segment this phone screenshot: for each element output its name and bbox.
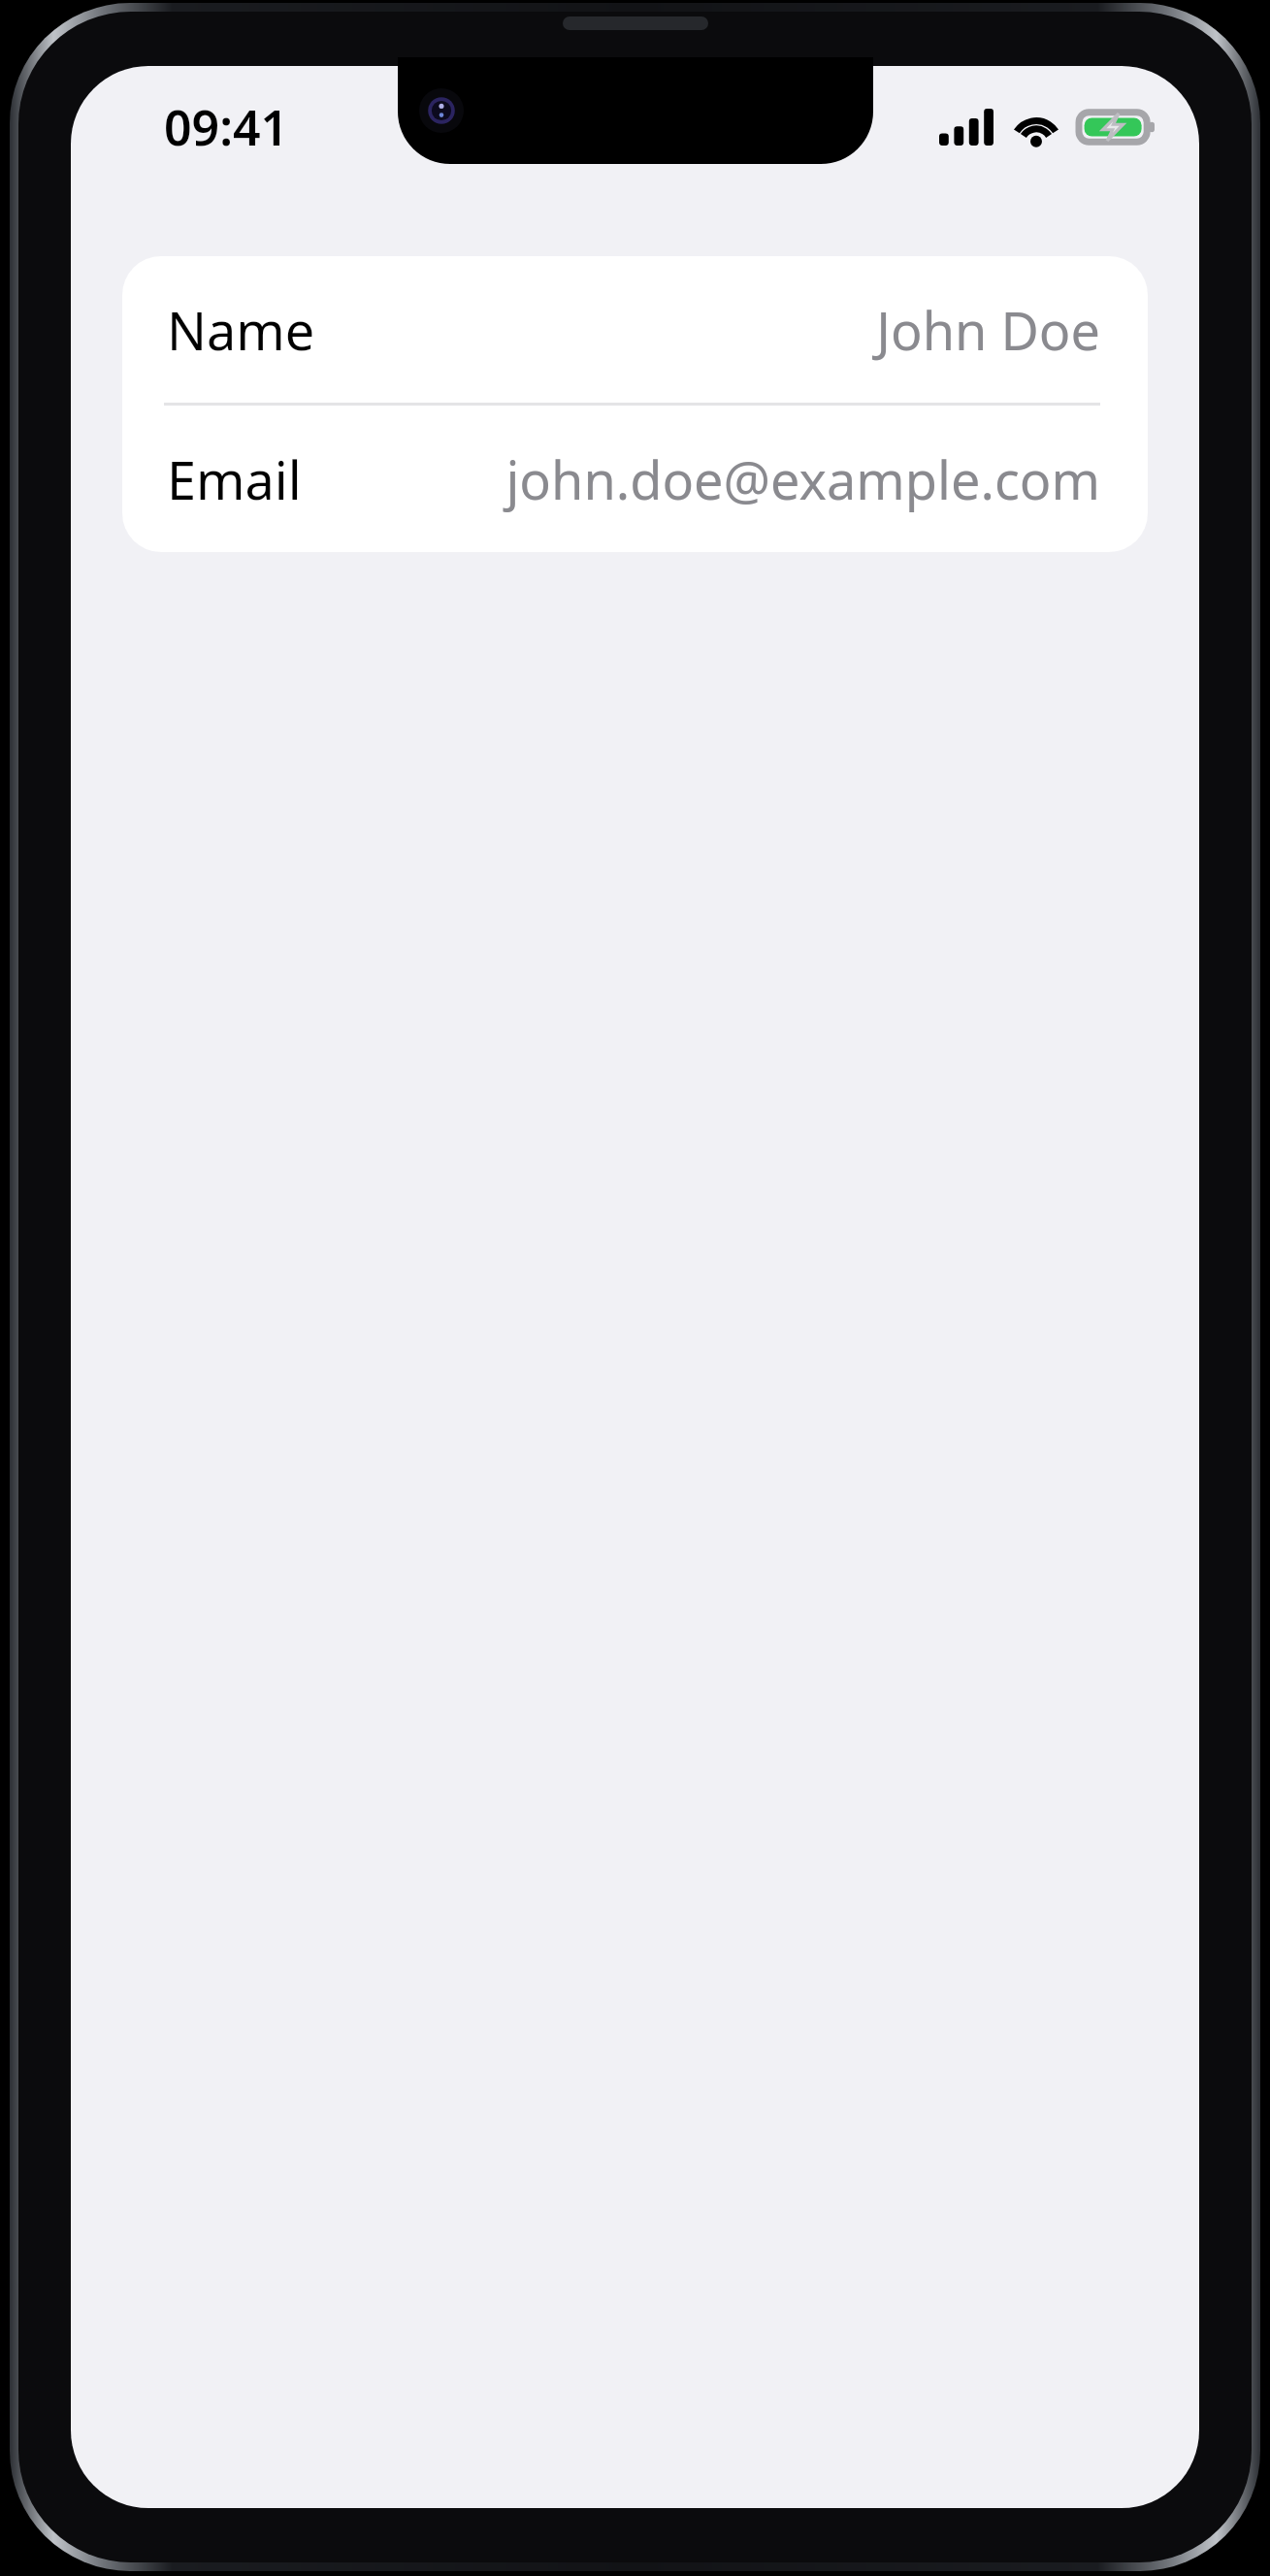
staticText: John Doe — [876, 294, 1100, 366]
staticText: 09:41 — [164, 94, 289, 160]
staticText: john.doe@example.com — [505, 443, 1100, 515]
button[interactable]: Email — [122, 406, 1148, 552]
staticText: Name — [167, 294, 315, 366]
staticText: Email — [167, 443, 302, 515]
button[interactable]: Name — [122, 256, 1148, 403]
